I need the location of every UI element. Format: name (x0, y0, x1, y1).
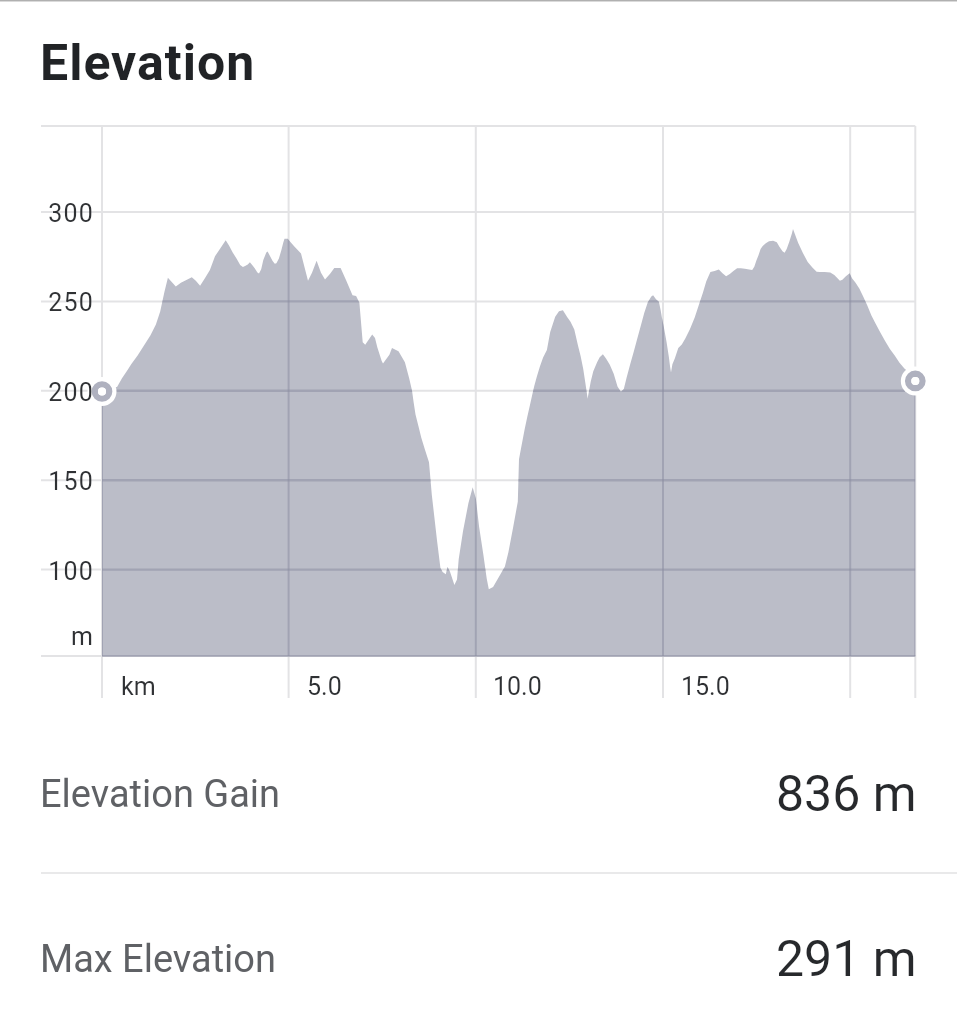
staticText: 5.0 (307, 672, 342, 701)
other: Elevation profile chart (0, 105, 957, 730)
staticText: 250 (48, 288, 94, 317)
button[interactable]: Elevation Gain (0, 712, 957, 877)
staticText: 100 (48, 557, 94, 586)
staticText: Max Elevation (40, 937, 276, 982)
staticText: 836 m (776, 765, 917, 824)
button[interactable]: Max Elevation (0, 877, 957, 1024)
staticText: Elevation (40, 34, 256, 93)
staticText: m (70, 622, 94, 651)
staticText: 10.0 (493, 672, 542, 701)
staticText: 150 (48, 467, 94, 496)
staticText: 291 m (776, 930, 917, 989)
staticText: 300 (48, 199, 94, 228)
staticText: km (121, 672, 156, 701)
staticText: 200 (48, 378, 94, 407)
staticText: 15.0 (681, 672, 730, 701)
staticText: Elevation Gain (40, 772, 281, 817)
